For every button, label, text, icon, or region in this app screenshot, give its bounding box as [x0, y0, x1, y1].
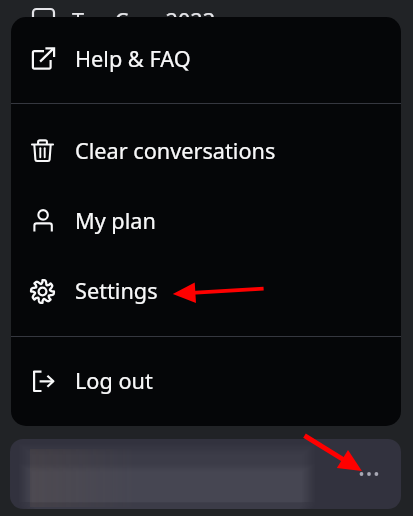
- staticText: Settings: [75, 276, 158, 306]
- button[interactable]: Help & FAQ: [11, 17, 401, 103]
- staticText: Help & FAQ: [75, 44, 191, 74]
- staticText: My plan: [75, 206, 156, 236]
- button[interactable]: Settings: [11, 244, 401, 336]
- button[interactable]: Clear conversations: [11, 104, 401, 174]
- staticText: Clear conversations: [75, 136, 276, 166]
- button[interactable]: My plan: [11, 174, 401, 244]
- button[interactable]: Top Cars 2023: [0, 0, 413, 40]
- staticText: Top Cars 2023: [72, 6, 216, 36]
- button[interactable]: Message input: [10, 439, 401, 509]
- button[interactable]: Log out: [11, 337, 401, 426]
- staticText: Log out: [75, 366, 153, 396]
